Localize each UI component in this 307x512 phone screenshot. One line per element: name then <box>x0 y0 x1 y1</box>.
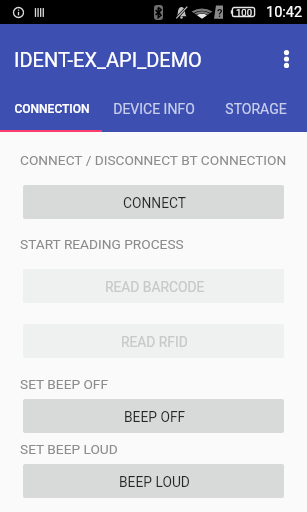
button[interactable]: BEEP OFF <box>23 399 284 433</box>
staticText: STORAGE <box>225 101 287 117</box>
button[interactable]: CONNECTION <box>0 88 103 130</box>
staticText: IDENT-EX_API_DEMO <box>14 48 202 71</box>
button[interactable]: READ RFID <box>23 324 284 358</box>
button[interactable]: BEEP LOUD <box>23 464 284 498</box>
staticText: 10:42 <box>266 4 303 21</box>
staticText: BEEP OFF <box>124 409 186 425</box>
button[interactable]: CONNECT <box>23 185 284 219</box>
staticText: 100 <box>236 7 253 18</box>
staticText: DEVICE INFO <box>113 101 195 117</box>
staticText: START READING PROCESS <box>20 236 184 252</box>
button[interactable]: DEVICE INFO <box>103 88 205 130</box>
staticText: BEEP LOUD <box>119 474 190 490</box>
button[interactable]: STORAGE <box>205 88 307 130</box>
staticText: ? <box>217 7 223 20</box>
staticText: SET BEEP LOUD <box>20 441 118 457</box>
staticText: CONNECT / DISCONNECT BT CONNECTION <box>20 152 287 168</box>
button[interactable]: More options <box>268 35 305 83</box>
button[interactable]: READ BARCODE <box>23 269 284 303</box>
staticText: CONNECTION <box>14 102 90 116</box>
staticText: READ BARCODE <box>105 279 205 295</box>
staticText: SET BEEP OFF <box>20 376 108 392</box>
staticText: READ RFID <box>121 334 188 350</box>
staticText: CONNECT <box>123 195 187 211</box>
